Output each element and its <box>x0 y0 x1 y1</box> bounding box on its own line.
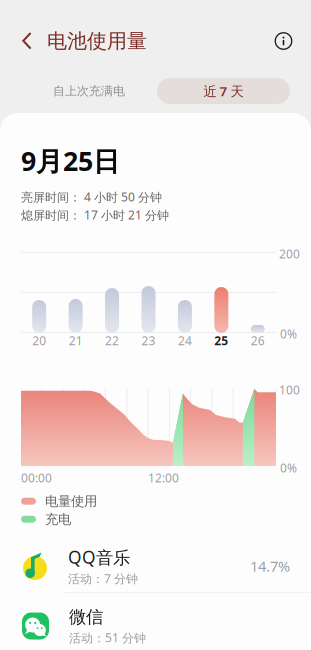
staticText: 20 <box>32 332 46 348</box>
button[interactable]: 自上次充满电 <box>21 78 157 104</box>
staticText: 活动：51 分钟 <box>69 630 146 646</box>
staticText: 电池使用量 <box>47 29 147 53</box>
staticText: 活动：7 分钟 <box>68 571 138 586</box>
staticText: 自上次充满电 <box>53 84 125 98</box>
staticText: 12:00 <box>148 470 179 486</box>
staticText: QQ音乐 <box>68 545 130 569</box>
staticText: 近 7 天 <box>203 82 243 100</box>
staticText: 21 <box>69 332 83 348</box>
button[interactable]: QQ音乐 <box>0 540 311 592</box>
staticText: 200 <box>279 246 300 262</box>
staticText: 充电 <box>45 511 71 527</box>
staticText: 电量使用 <box>45 493 97 509</box>
button[interactable]: 电池使用量 <box>0 20 161 62</box>
staticText: 24 <box>178 332 192 348</box>
button[interactable]: 微信 <box>0 600 311 650</box>
staticText: 26 <box>251 332 265 348</box>
staticText: 0% <box>280 460 297 476</box>
staticText: 熄屏时间： 17 小时 21 分钟 <box>21 207 169 223</box>
staticText: 微信 <box>69 606 103 628</box>
staticText: 100 <box>279 382 300 398</box>
staticText: 25 <box>214 332 228 348</box>
staticText: 9月25日 <box>21 143 120 178</box>
staticText: 23 <box>141 332 155 348</box>
staticText: 亮屏时间： 4 小时 50 分钟 <box>21 189 162 205</box>
staticText: 14.7% <box>250 556 290 576</box>
staticText: 0% <box>280 326 297 342</box>
staticText: 22 <box>105 332 119 348</box>
button[interactable]: 近 7 天 <box>157 78 290 104</box>
button[interactable]: Information <box>260 20 311 62</box>
staticText: 00:00 <box>21 470 52 486</box>
